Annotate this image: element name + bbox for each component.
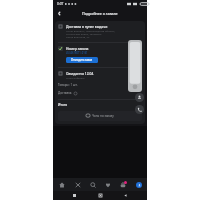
staticText: 4534678071-0161 <box>66 51 88 55</box>
button[interactable]: Favorites <box>101 178 114 191</box>
staticText: Подробнее о заказе <box>82 11 118 16</box>
button[interactable]: Search <box>86 178 99 191</box>
staticText: 0:07 <box>57 2 64 6</box>
staticText: Доставка <box>58 91 72 95</box>
staticText: Пункт Boxberry, Ленинградская область, <box>66 29 116 32</box>
staticText: Отследить заказ <box>71 58 93 62</box>
staticText: Ожидается 12.04 <box>66 71 94 75</box>
button[interactable]: Call <box>135 105 144 114</box>
button[interactable]: Home <box>55 178 68 191</box>
staticText: Чаты по заказу <box>92 114 114 118</box>
staticText: Скоро заберём <box>66 76 85 79</box>
staticText: Тосненский район, Тельмана <box>66 32 102 35</box>
button[interactable]: Cart <box>116 178 129 191</box>
button[interactable]: Profile <box>132 178 145 191</box>
staticText: Итого <box>58 103 68 107</box>
button[interactable]: Чаты по заказу <box>58 111 142 121</box>
staticText: улица Болотная, 22 <box>66 35 90 38</box>
button[interactable]: Отследить заказ <box>66 57 98 63</box>
staticText: Номер заказа <box>66 46 89 50</box>
staticText: Товары: 1 шт. <box>58 83 78 87</box>
staticText: Доставка в пункт выдачи <box>66 24 108 28</box>
button[interactable]: Recents <box>70 191 79 200</box>
button[interactable]: Account <box>135 93 144 102</box>
button[interactable]: Catalog <box>71 178 84 191</box>
button[interactable]: Home <box>96 191 105 200</box>
button[interactable]: Back <box>55 9 64 18</box>
button[interactable]: Back <box>121 191 130 200</box>
